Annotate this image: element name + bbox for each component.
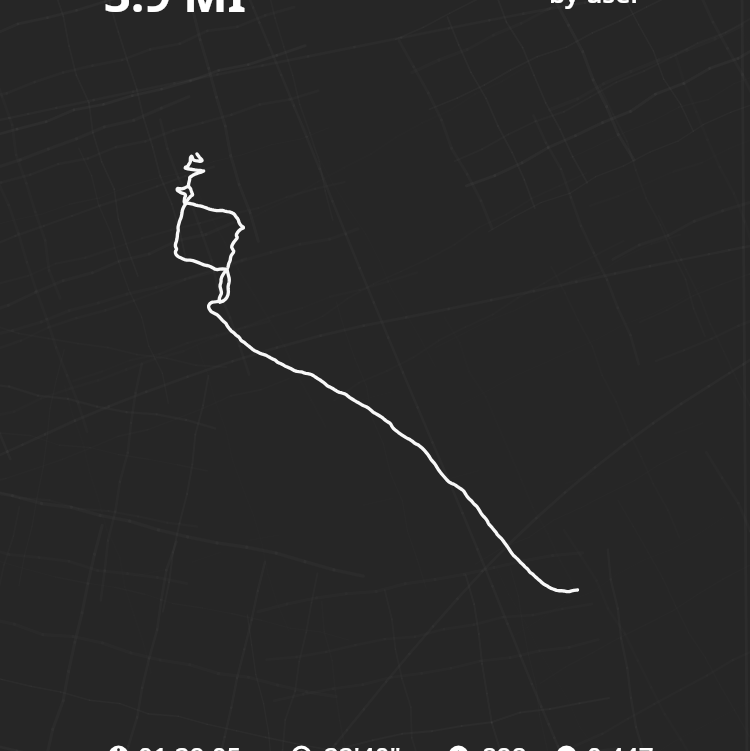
button[interactable]: Average pace 22 minutes 40 seconds	[291, 743, 401, 751]
button[interactable]: Elevation gain 898 feet	[448, 743, 527, 751]
button[interactable]: Activity route map	[0, 0, 750, 751]
staticText: 0.447	[587, 738, 654, 751]
staticText: 01:29:05	[138, 738, 242, 751]
button[interactable]: Average speed 0.447	[556, 743, 654, 751]
staticText: by user	[549, 0, 642, 10]
button[interactable]: Elapsed time 01:29:05	[108, 743, 242, 751]
staticText: 22'40"	[324, 738, 401, 751]
staticText: 898	[482, 738, 527, 751]
button[interactable]: 3.9 MI	[104, 0, 246, 26]
button[interactable]: by user	[549, 0, 642, 10]
staticText: 3.9 MI	[104, 0, 246, 26]
